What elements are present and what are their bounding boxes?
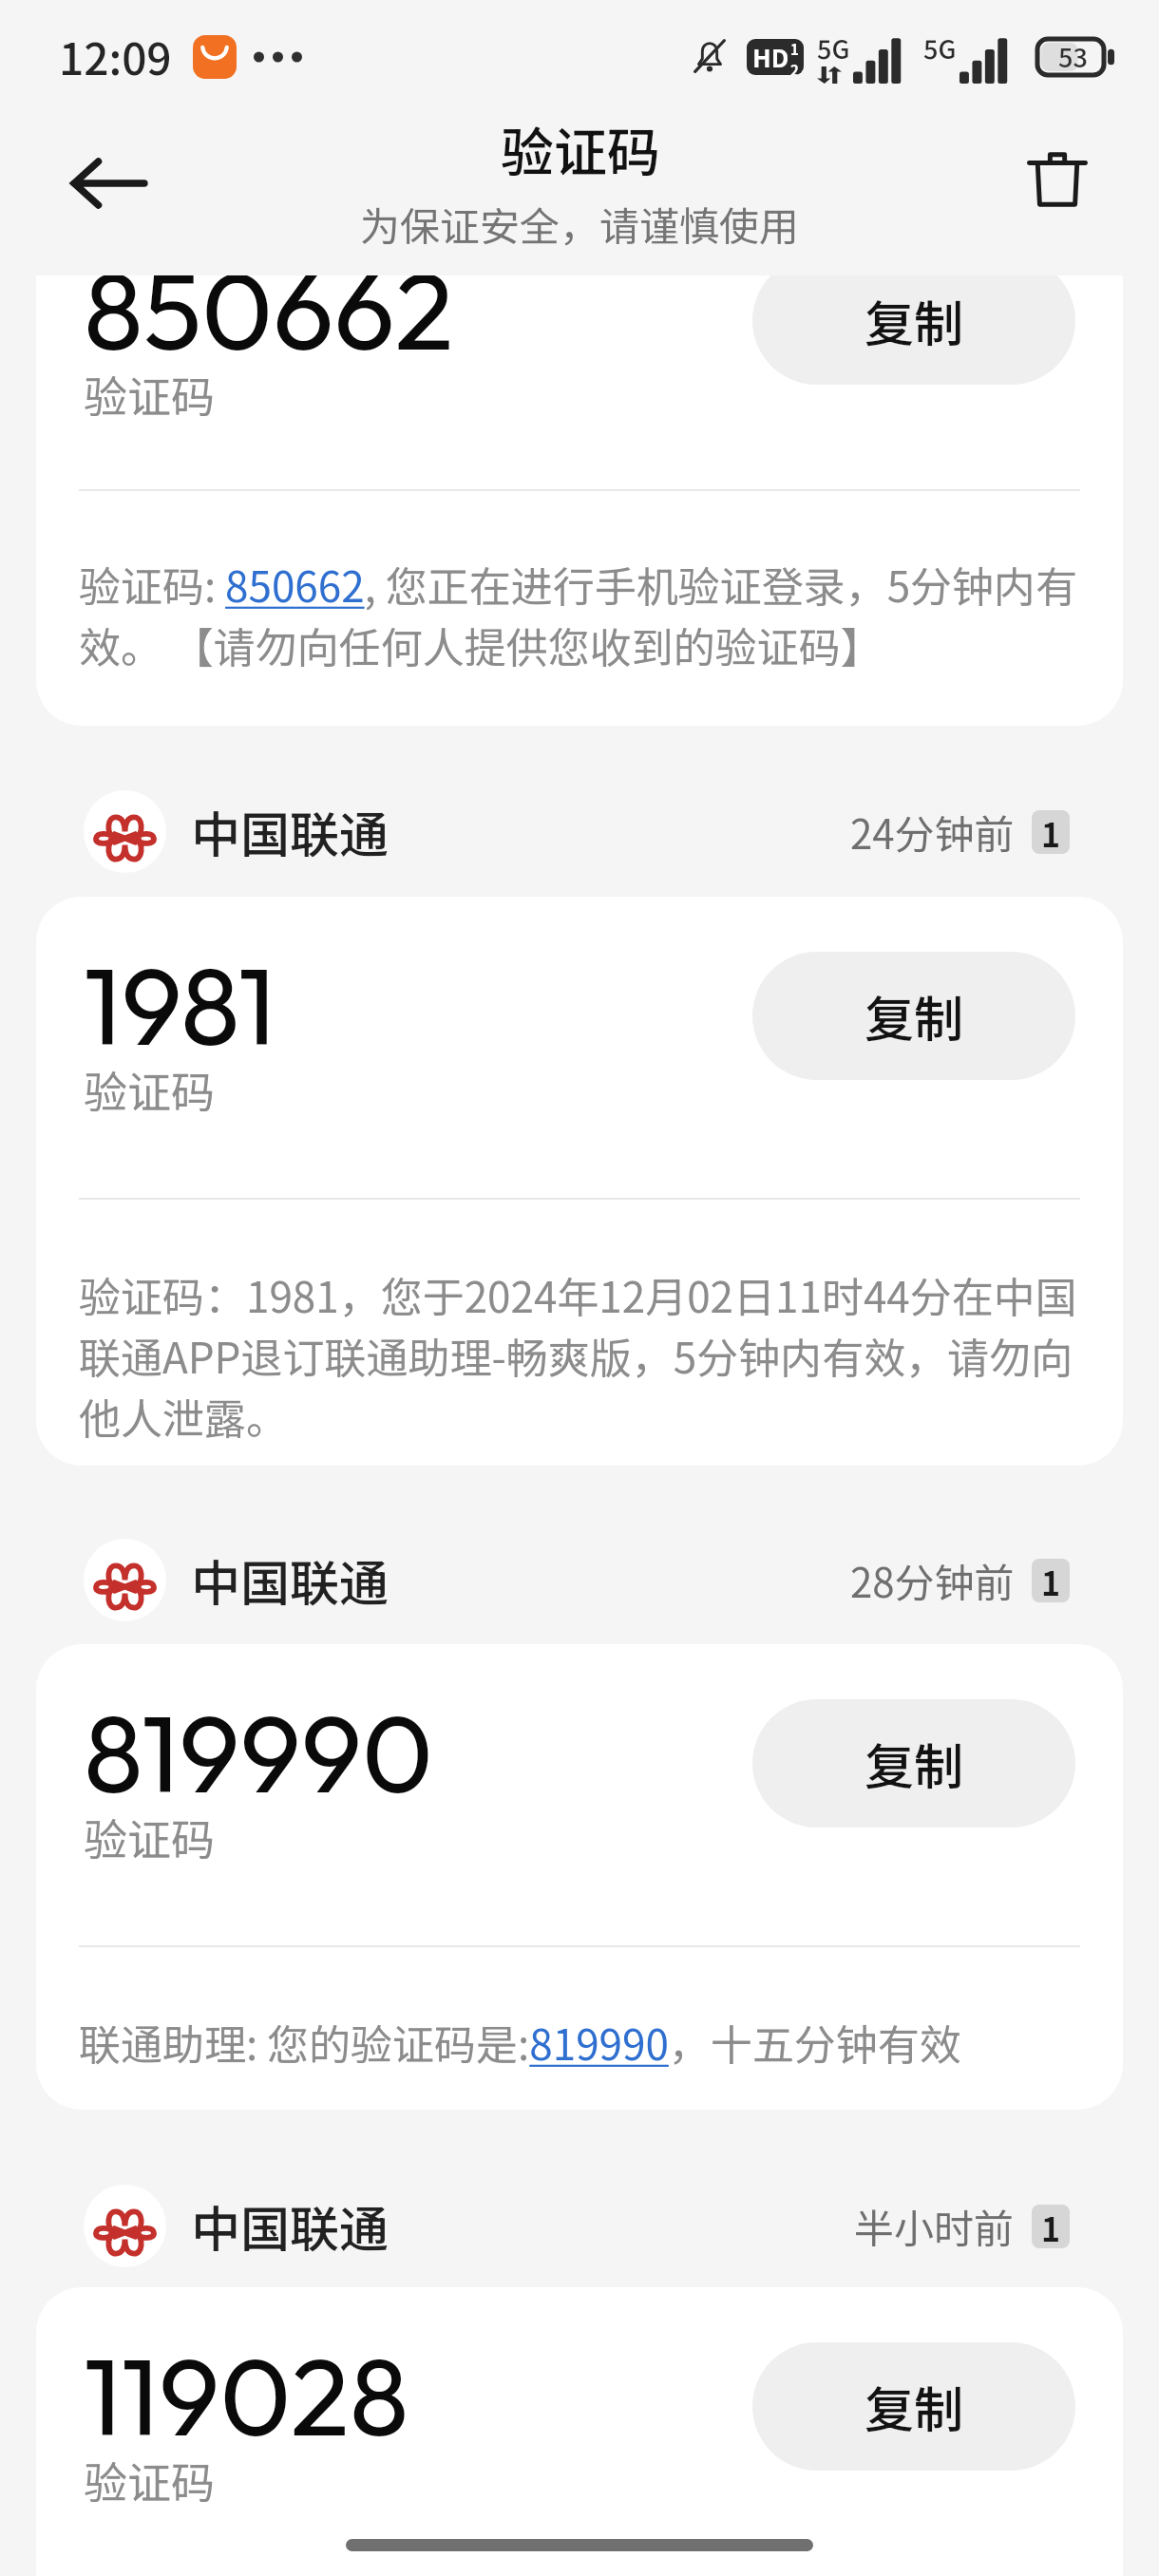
staticText: 复制	[864, 2371, 964, 2442]
staticText: HD	[752, 39, 789, 75]
staticText: 验证码	[84, 1058, 215, 1122]
staticText: 53	[1058, 38, 1088, 75]
button[interactable]: 复制	[752, 275, 1075, 385]
staticText: 复制	[864, 285, 964, 356]
button[interactable]: Delete	[1005, 127, 1110, 232]
staticText: 验证码	[501, 110, 660, 187]
staticText: 中国联通	[191, 796, 389, 867]
staticText: 1981	[84, 937, 276, 1073]
staticText: 中国联通	[191, 1544, 389, 1616]
staticText: 1	[1041, 1559, 1061, 1602]
staticText: 819990	[84, 1684, 433, 1821]
staticText: 1	[790, 39, 799, 60]
staticText: 验证码	[84, 2449, 215, 2512]
staticText: 1	[1041, 810, 1061, 854]
staticText: 5G	[817, 29, 850, 66]
staticText: 119028	[84, 2327, 409, 2464]
button[interactable]: Back	[57, 131, 161, 236]
staticText: 850662	[84, 275, 454, 378]
button[interactable]: 复制	[752, 2342, 1075, 2471]
button[interactable]: 复制	[752, 952, 1075, 1080]
staticText: 24分钟前	[850, 803, 1015, 861]
staticText: 半小时前	[854, 2197, 1015, 2255]
staticText: 5G	[923, 29, 957, 66]
staticText: 复制	[864, 1728, 964, 1799]
button[interactable]: 复制	[752, 1699, 1075, 1828]
staticText: 1	[1041, 2205, 1061, 2248]
staticText: 12:09	[59, 25, 172, 88]
staticText: 验证码	[84, 1806, 215, 1869]
staticText: 为保证安全，请谨慎使用	[360, 195, 800, 253]
staticText: 复制	[864, 980, 964, 1051]
staticText: 2	[790, 60, 799, 75]
staticText: 验证码：1981，您于2024年12月02日11时44分在中国联通APP退订联通…	[79, 1264, 1080, 1447]
staticText: 中国联通	[191, 2190, 389, 2262]
staticText: 验证码	[84, 363, 215, 426]
staticText: 28分钟前	[850, 1551, 1015, 1609]
staticText: 验证码: 850662, 您正在进行手机验证登录，5分钟内有效。 【请勿向任何人…	[79, 554, 1080, 675]
staticText: 联通助理: 您的验证码是:819990，十五分钟有效	[79, 2012, 961, 2073]
